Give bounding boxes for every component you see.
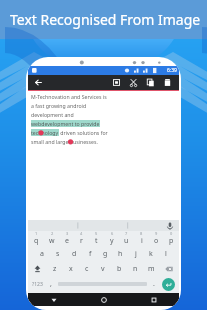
button[interactable]: s xyxy=(50,246,66,261)
staticText: n xyxy=(133,264,138,274)
button[interactable]: 8 xyxy=(134,231,149,246)
staticText: , xyxy=(50,279,52,289)
staticText: t xyxy=(95,236,98,246)
button[interactable]: Copy xyxy=(142,75,159,90)
button[interactable]: b xyxy=(111,261,127,276)
button[interactable]: 5 xyxy=(89,231,104,246)
button[interactable]: j xyxy=(128,246,143,261)
button[interactable]: 0 xyxy=(164,231,179,246)
button[interactable]: Home xyxy=(79,293,129,306)
button[interactable]: n xyxy=(127,261,143,276)
staticText: b xyxy=(117,264,122,274)
button[interactable]: Select all xyxy=(108,75,125,90)
staticText: i xyxy=(141,236,143,246)
staticText: a xyxy=(40,249,44,259)
button[interactable]: l xyxy=(158,246,173,261)
staticText: 8 xyxy=(140,231,143,236)
button[interactable]: Recent apps xyxy=(129,293,179,306)
staticText: small and large businesses. xyxy=(31,138,98,145)
button[interactable]: 1 xyxy=(28,231,44,246)
staticText: m xyxy=(148,264,155,274)
staticText: v xyxy=(101,264,105,274)
staticText: 9 xyxy=(155,231,158,236)
button[interactable]: k xyxy=(143,246,158,261)
staticText: technology xyxy=(31,129,59,136)
staticText: . xyxy=(153,279,155,289)
staticText: 6:39 xyxy=(167,67,177,74)
staticText: development and xyxy=(31,111,74,118)
button[interactable]: g xyxy=(98,246,113,261)
button[interactable]: ?123 xyxy=(28,276,46,292)
staticText: w xyxy=(49,236,55,246)
button[interactable]: 9 xyxy=(149,231,164,246)
staticText: p xyxy=(169,236,174,246)
staticText: s xyxy=(56,249,60,259)
button[interactable]: h xyxy=(113,246,128,261)
button[interactable]: Delete xyxy=(159,75,176,90)
staticText: 7 xyxy=(125,231,128,236)
staticText: 6 xyxy=(111,231,114,236)
button[interactable]: . xyxy=(149,276,158,292)
staticText: webdevelopment to provide xyxy=(31,120,100,127)
staticText: o xyxy=(154,236,159,246)
staticText: l xyxy=(165,249,167,259)
staticText: h xyxy=(118,249,123,259)
button[interactable]: , xyxy=(46,276,55,292)
button[interactable]: 3 xyxy=(59,231,74,246)
staticText: f xyxy=(89,249,92,259)
button[interactable]: Back xyxy=(28,293,79,306)
staticText: 1 xyxy=(35,231,38,236)
staticText: e xyxy=(65,236,69,246)
staticText: M-Technovation and Services is xyxy=(31,93,107,100)
button[interactable]: f xyxy=(82,246,98,261)
button[interactable]: 6 xyxy=(104,231,119,246)
button[interactable]: Enter xyxy=(158,276,179,292)
button[interactable]: Shift xyxy=(28,261,47,276)
staticText: Text Recognised From Image xyxy=(10,10,201,29)
button[interactable]: z xyxy=(47,261,63,276)
staticText: 3 xyxy=(66,231,69,236)
staticText: 0 xyxy=(170,231,173,236)
staticText: x xyxy=(69,264,73,274)
staticText: z xyxy=(53,264,57,274)
staticText: 5 xyxy=(95,231,98,236)
button[interactable]: x xyxy=(63,261,79,276)
staticText: y xyxy=(110,236,114,246)
button[interactable]: a xyxy=(34,246,50,261)
staticText: r xyxy=(80,236,83,246)
staticText: c xyxy=(85,264,89,274)
button[interactable]: Space xyxy=(55,276,149,292)
staticText: g xyxy=(103,249,108,259)
button[interactable]: m xyxy=(143,261,159,276)
staticText: u xyxy=(124,236,129,246)
staticText: q xyxy=(34,236,39,246)
staticText: 4 xyxy=(80,231,83,236)
staticText: k xyxy=(149,249,153,259)
staticText: a fast growing android xyxy=(31,102,87,109)
staticText: j xyxy=(135,249,137,259)
button[interactable]: Backspace xyxy=(159,261,179,276)
button[interactable]: Back xyxy=(28,75,48,90)
button[interactable]: 4 xyxy=(74,231,89,246)
button[interactable]: Cut xyxy=(125,75,142,90)
button[interactable]: 7 xyxy=(119,231,134,246)
button[interactable]: c xyxy=(79,261,95,276)
button[interactable]: v xyxy=(95,261,111,276)
staticText: 2 xyxy=(51,231,54,236)
button[interactable]: 2 xyxy=(44,231,59,246)
staticText: driven solutions for xyxy=(59,129,108,136)
staticText: ?123 xyxy=(32,281,43,288)
staticText: d xyxy=(72,249,77,259)
button[interactable]: d xyxy=(66,246,82,261)
